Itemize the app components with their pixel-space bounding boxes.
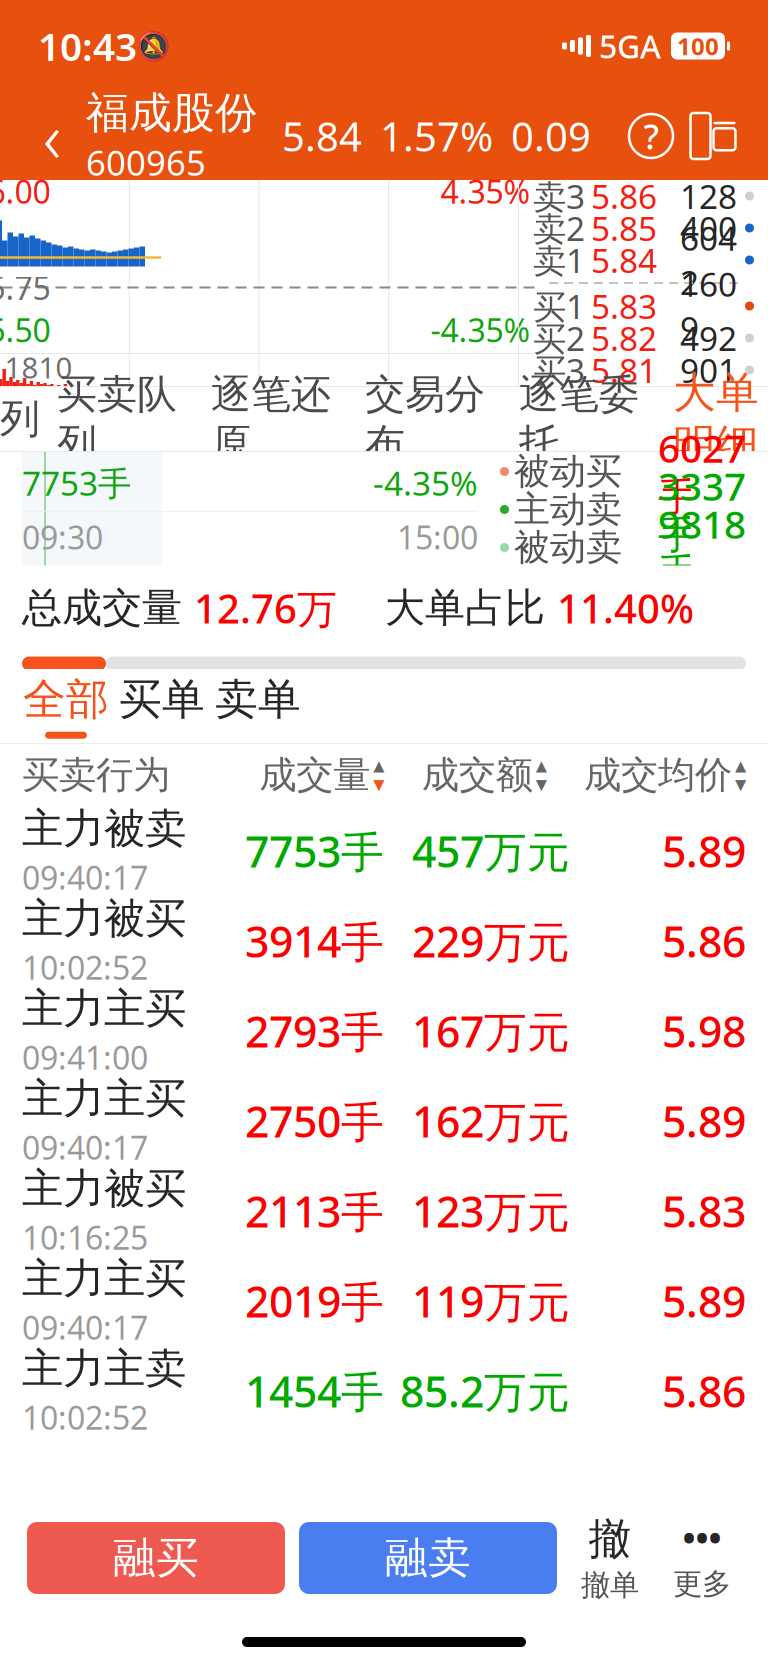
button[interactable]: 主力主买: [0, 1256, 768, 1346]
button[interactable]: 切换布局: [682, 105, 744, 167]
staticText: ?: [643, 113, 658, 159]
button[interactable]: 主力主卖: [0, 1346, 768, 1436]
staticText: 卖3: [533, 174, 585, 218]
staticText: 5.75: [0, 266, 50, 309]
staticText: ▼: [536, 776, 547, 793]
staticText: 10:16:25: [22, 1216, 148, 1259]
staticText: 167万元: [412, 1003, 570, 1059]
staticText: 4.35%: [440, 170, 530, 212]
staticText: 买卖队列: [57, 370, 177, 468]
staticText: 15:00: [397, 516, 478, 558]
staticText: 0.09: [511, 109, 591, 162]
staticText: 2019手: [245, 1273, 384, 1329]
button[interactable]: 主力被买: [0, 896, 768, 986]
staticText: ▲: [536, 757, 547, 774]
staticText: 100: [677, 30, 719, 62]
button[interactable]: 主力被卖: [0, 806, 768, 896]
staticText: 卖1: [533, 238, 585, 282]
staticText: 10:02:52: [22, 1396, 148, 1439]
staticText: 买1: [533, 284, 585, 328]
staticText: 5.86: [591, 174, 657, 218]
staticText: 主力主卖: [22, 1343, 186, 1394]
staticText: 2113手: [245, 1183, 384, 1239]
button[interactable]: 主力主买: [0, 986, 768, 1076]
staticText: 7753手: [245, 823, 384, 879]
staticText: 被动买: [514, 449, 622, 494]
staticText: 逐笔委托: [519, 370, 639, 468]
staticText: 主动卖: [514, 487, 622, 532]
staticText: 3337手: [658, 460, 746, 559]
staticText: 5.89: [662, 823, 746, 879]
button[interactable]: 全部: [18, 669, 114, 743]
staticText: 5.83: [591, 284, 657, 328]
staticText: 主力被卖: [22, 803, 186, 854]
button[interactable]: 主力被买: [0, 1166, 768, 1256]
staticText: 买卖行为: [22, 752, 170, 798]
staticText: 5GA: [591, 25, 661, 67]
staticText: 5.84: [282, 109, 362, 162]
staticText: 7753手: [22, 461, 131, 505]
staticText: 5.50: [0, 308, 50, 351]
staticText: 10:02:52: [22, 946, 148, 989]
staticText: 9818手: [658, 498, 746, 597]
staticText: ‹: [43, 90, 61, 182]
staticText: 融卖: [385, 1532, 471, 1584]
staticText: -4.35%: [373, 461, 478, 505]
button[interactable]: 大单明细: [656, 387, 759, 451]
staticText: 撤单: [581, 1567, 639, 1603]
staticText: ▼: [373, 776, 384, 793]
staticText: 5.98: [662, 1003, 746, 1059]
staticText: 123万元: [412, 1183, 570, 1239]
staticText: 卖2: [533, 206, 585, 250]
button[interactable]: 逐笔委托: [502, 387, 656, 451]
button[interactable]: 成交量: [259, 752, 384, 798]
button[interactable]: 融买: [27, 1522, 285, 1594]
staticText: •••: [682, 1514, 721, 1560]
staticText: -4.35%: [430, 308, 530, 351]
button[interactable]: 撤: [571, 1519, 649, 1597]
button[interactable]: 帮助: [620, 105, 682, 167]
staticText: 400: [680, 206, 737, 250]
staticText: 6042: [680, 216, 737, 304]
staticText: 成交量: [259, 752, 370, 798]
staticText: 总成交量: [22, 583, 194, 632]
button[interactable]: 返回: [24, 97, 80, 175]
button[interactable]: 融卖: [299, 1522, 557, 1594]
staticText: 主力被买: [22, 1163, 186, 1214]
staticText: 买单: [119, 673, 205, 726]
staticText: 229万元: [412, 913, 570, 969]
staticText: 1.57%: [380, 109, 493, 162]
staticText: 09:40:17: [22, 1306, 148, 1349]
staticText: 主力主买: [22, 1253, 186, 1304]
staticText: 买3: [533, 348, 585, 392]
staticText: 5.85: [591, 206, 657, 250]
staticText: 5.86: [662, 1363, 746, 1419]
button[interactable]: 成交额: [422, 752, 547, 798]
button[interactable]: 成交均价: [584, 752, 746, 798]
staticText: 162万元: [412, 1093, 570, 1149]
staticText: 2750手: [245, 1093, 384, 1149]
staticText: 11.40%: [557, 581, 694, 634]
button[interactable]: 逐笔还原: [194, 387, 348, 451]
staticText: 10:43: [38, 20, 137, 72]
staticText: 1609: [680, 262, 737, 350]
staticText: 3914手: [245, 913, 384, 969]
button[interactable]: 买单: [114, 669, 210, 743]
button[interactable]: 买卖队列: [40, 387, 194, 451]
button[interactable]: 主力主买: [0, 1076, 768, 1166]
staticText: 492: [680, 316, 737, 360]
staticText: 5.81: [591, 348, 657, 392]
staticText: 5.83: [662, 1183, 746, 1239]
staticText: 119万元: [412, 1273, 570, 1329]
staticText: 主力主买: [22, 983, 186, 1034]
staticText: 撤: [588, 1513, 631, 1565]
staticText: 主力主买: [22, 1073, 186, 1124]
staticText: 5.82: [591, 316, 657, 360]
staticText: 5.84: [591, 238, 657, 282]
staticText: 融买: [113, 1532, 199, 1584]
button[interactable]: 卖单: [210, 669, 306, 743]
staticText: 5.89: [662, 1273, 746, 1329]
staticText: 901: [680, 348, 737, 392]
button[interactable]: •••: [663, 1519, 741, 1597]
button[interactable]: 交易分布: [348, 387, 502, 451]
